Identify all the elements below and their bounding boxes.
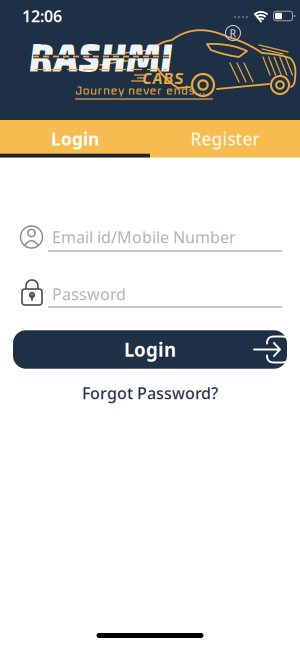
button[interactable]: Login: [0, 120, 150, 157]
staticText: Forgot Password?: [82, 382, 218, 404]
staticText: RASHMI: [28, 34, 174, 78]
staticText: Journey never ends...: [75, 85, 205, 97]
staticText: CABS: [142, 69, 183, 87]
staticText: Login: [124, 337, 176, 362]
staticText: Email id/Mobile Number: [52, 226, 236, 248]
staticText: Password: [52, 283, 126, 305]
staticText: Register: [190, 127, 259, 150]
button[interactable]: Forgot Password?: [74, 378, 226, 408]
staticText: Login: [51, 127, 99, 150]
staticText: R: [229, 26, 236, 40]
button[interactable]: Register: [150, 120, 300, 157]
button[interactable]: Login: [13, 330, 287, 369]
staticText: 12:06: [22, 5, 62, 27]
